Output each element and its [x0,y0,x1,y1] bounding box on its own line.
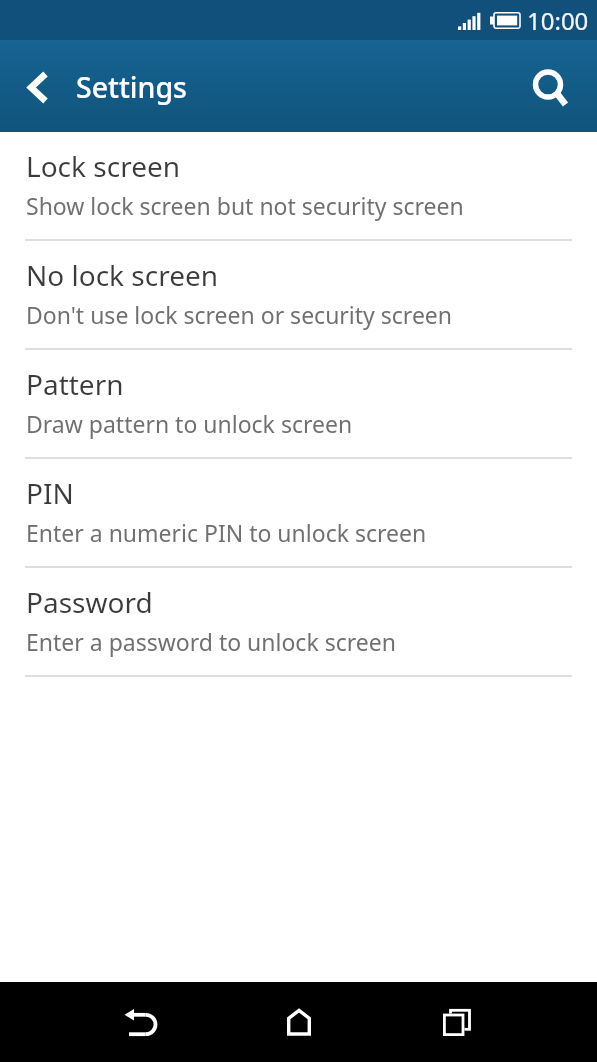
button[interactable] [270,982,327,1062]
button[interactable]: PIN [0,459,597,568]
staticText: Pattern [26,365,124,403]
staticText: Password [26,583,153,621]
button[interactable]: Pattern [0,350,597,459]
staticText: No lock screen [26,256,219,294]
button[interactable]: Lock screen [0,132,597,241]
staticText: 10:00 [527,4,589,37]
staticText: Enter a password to unlock screen [26,626,396,657]
staticText: Show lock screen but not security screen [26,190,464,221]
button[interactable]: Password [0,568,597,677]
staticText: Draw pattern to unlock screen [26,408,353,439]
button[interactable] [112,982,168,1062]
staticText: Lock screen [26,147,181,185]
button[interactable] [518,58,582,114]
staticText: PIN [26,474,74,512]
staticText: Enter a numeric PIN to unlock screen [26,517,427,548]
staticText: Don't use lock screen or security screen [26,299,453,330]
button[interactable]: No lock screen [0,241,597,350]
staticText: Settings [76,68,187,107]
button[interactable] [429,982,485,1062]
button[interactable] [14,59,64,115]
